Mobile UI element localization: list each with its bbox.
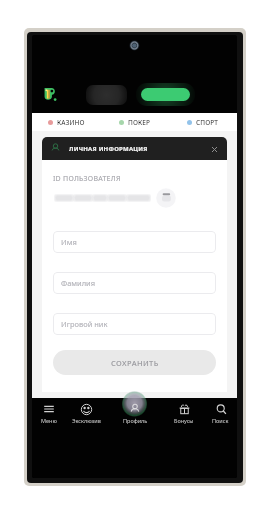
staticText: Эксклюзив bbox=[72, 417, 101, 424]
button[interactable]: Копировать bbox=[156, 188, 176, 208]
button[interactable]: СОХРАНИТЬ bbox=[53, 350, 216, 375]
button[interactable]: Бонусы bbox=[164, 398, 204, 434]
button[interactable]: Имя bbox=[53, 231, 216, 253]
staticText: СПОРТ bbox=[196, 118, 219, 127]
staticText: Меню bbox=[41, 417, 57, 424]
button[interactable]: Поиск bbox=[204, 398, 237, 434]
button[interactable]: Баланс bbox=[86, 85, 127, 105]
staticText: Бонусы bbox=[174, 417, 194, 424]
staticText: ЛИЧНАЯ ИНФОРМАЦИЯ bbox=[69, 145, 148, 153]
button[interactable]: Закрыть bbox=[208, 143, 220, 155]
button[interactable]: Эксклюзив bbox=[66, 398, 106, 434]
staticText: Имя bbox=[61, 237, 77, 247]
button[interactable]: Игровой ник bbox=[53, 313, 216, 335]
staticText: КАЗИНО bbox=[57, 118, 85, 127]
button[interactable]: Логотип 1xPlay bbox=[42, 86, 58, 103]
staticText: ID ПОЛЬЗОВАТЕЛЯ bbox=[53, 174, 121, 184]
staticText: СОХРАНИТЬ bbox=[111, 358, 159, 368]
button[interactable]: Депозит bbox=[141, 88, 190, 101]
staticText: Профиль bbox=[123, 417, 148, 424]
button[interactable]: Профиль bbox=[106, 398, 164, 434]
staticText: Поиск bbox=[212, 417, 229, 424]
button[interactable]: СПОРТ bbox=[169, 113, 237, 131]
button[interactable]: Меню bbox=[32, 398, 66, 434]
staticText: Игровой ник bbox=[61, 319, 108, 329]
staticText: ПОКЕР bbox=[128, 118, 151, 127]
button[interactable]: КАЗИНО bbox=[32, 113, 101, 131]
button[interactable]: Фамилия bbox=[53, 272, 216, 294]
staticText: Фамилия bbox=[61, 278, 96, 288]
button[interactable]: ПОКЕР bbox=[101, 113, 169, 131]
button[interactable]: ЛИЧНАЯ ИНФОРМАЦИЯ bbox=[42, 137, 227, 160]
